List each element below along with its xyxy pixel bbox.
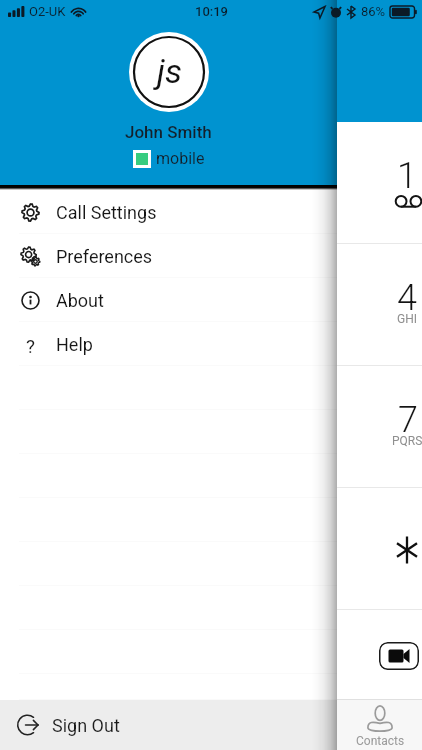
staticText: 7 (398, 399, 418, 441)
button[interactable]: Star (337, 488, 422, 610)
staticText: John Smith (125, 122, 212, 142)
button[interactable]: About (0, 278, 337, 322)
staticText: ? (26, 335, 35, 354)
button[interactable]: 7 (337, 366, 422, 488)
staticText: Call Settings (56, 202, 157, 223)
staticText: PQRS (392, 434, 422, 448)
staticText: 86% (361, 4, 386, 19)
staticText: 10:19 (195, 4, 228, 19)
staticText: GHI (397, 312, 417, 326)
staticText: About (56, 290, 104, 311)
staticText: Sign Out (52, 715, 120, 736)
button[interactable]: Profile avatar (129, 32, 209, 112)
staticText: 1 (397, 155, 417, 197)
staticText: js (157, 51, 182, 91)
button[interactable]: Preferences (0, 234, 337, 278)
staticText: Preferences (56, 246, 153, 267)
button[interactable]: ? (0, 322, 337, 366)
staticText: Contacts (356, 734, 405, 748)
button[interactable]: 1 (337, 122, 422, 244)
staticText: O2-UK (29, 4, 66, 19)
staticText: Help (56, 334, 93, 355)
button[interactable]: Call Settings (0, 190, 337, 234)
button[interactable]: Video call (379, 642, 419, 670)
staticText: mobile (156, 149, 205, 168)
staticText: 4 (397, 277, 417, 319)
button[interactable]: Sign Out (0, 700, 337, 750)
button[interactable]: Contacts (337, 699, 422, 750)
button[interactable]: 4 (337, 244, 422, 366)
